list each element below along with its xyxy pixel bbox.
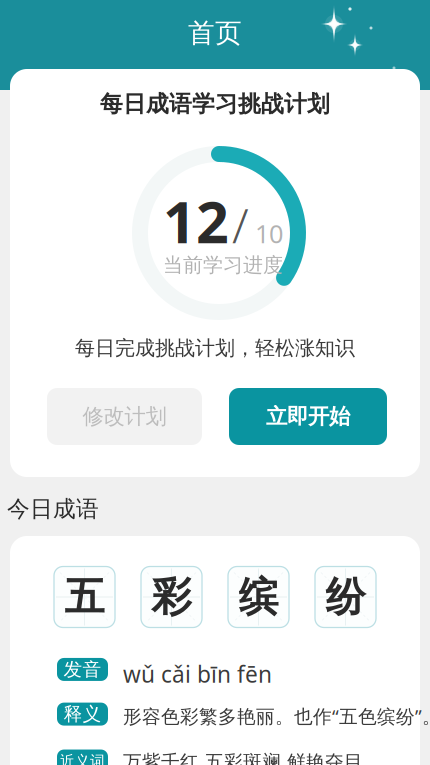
staticText: 当前学习进度 <box>163 253 283 277</box>
staticText: / <box>232 193 249 256</box>
staticText: 每日成语学习挑战计划 <box>100 90 330 118</box>
staticText: 立即开始 <box>266 403 350 430</box>
staticText: 彩 <box>151 572 191 621</box>
staticText: 纷 <box>325 572 365 621</box>
staticText: 五 <box>64 572 104 621</box>
staticText: 今日成语 <box>7 495 99 523</box>
staticText: 修改计划 <box>82 403 166 430</box>
staticText: 释义 <box>63 703 101 725</box>
staticText: 近义词 <box>60 752 105 765</box>
button[interactable]: 立即开始 <box>229 388 387 445</box>
staticText: 12 <box>163 183 229 259</box>
staticText: wǔ cǎi bīn fēn <box>123 659 272 689</box>
button[interactable]: 修改计划 <box>47 388 202 445</box>
staticText: 万紫千红 五彩斑斓 鲜艳夺目 <box>123 750 363 765</box>
staticText: 发音 <box>63 658 101 681</box>
staticText: 每日完成挑战计划，轻松涨知识 <box>75 336 355 360</box>
staticText: 缤 <box>238 572 278 621</box>
staticText: 形容色彩繁多艳丽。也作“五色缤纷”。 <box>123 704 430 728</box>
staticText: 首页 <box>188 17 242 49</box>
staticText: 10 <box>255 217 283 250</box>
